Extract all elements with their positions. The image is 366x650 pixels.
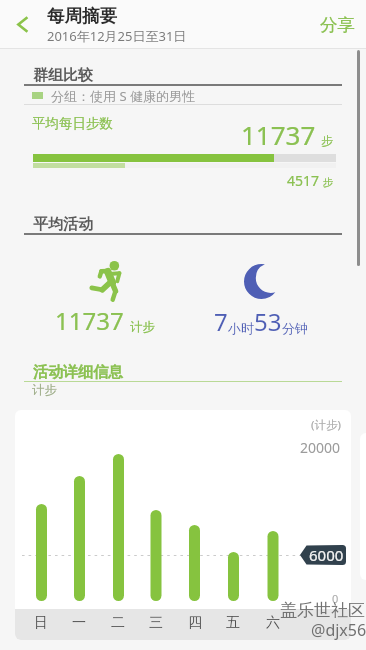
staticText: @djx56 xyxy=(311,619,366,641)
staticText: 0 xyxy=(332,591,339,606)
staticText: 每周摘要 xyxy=(47,5,117,27)
staticText: 11737 xyxy=(241,117,316,152)
staticText: 平均活动 xyxy=(33,215,93,234)
staticText: 日 xyxy=(34,614,48,632)
button[interactable]: 五 xyxy=(214,609,252,640)
staticText: 六 xyxy=(266,614,280,632)
staticText: 4517 xyxy=(287,171,320,190)
staticText: 三 xyxy=(149,614,163,632)
staticText: 分享 xyxy=(320,14,355,36)
button[interactable]: 三 xyxy=(137,609,175,640)
staticText: 盖乐世社区 xyxy=(280,600,365,621)
staticText: 分组：使用 S 健康的男性 xyxy=(51,87,195,104)
staticText: 计步 xyxy=(32,382,57,398)
staticText: 平均每日步数 xyxy=(32,115,113,132)
button[interactable]: 一 xyxy=(60,609,98,640)
button[interactable]: 四 xyxy=(176,609,214,640)
button[interactable]: 分享 xyxy=(306,0,366,49)
staticText: 步 xyxy=(323,176,334,189)
staticText: 一 xyxy=(72,614,86,632)
button[interactable]: 六 xyxy=(254,609,292,640)
staticText: 活动详细信息 xyxy=(33,363,123,382)
staticText: 分钟 xyxy=(282,320,308,336)
button[interactable]: 返回 xyxy=(0,0,45,49)
staticText: 群组比较 xyxy=(33,66,93,85)
staticText: 小时 xyxy=(228,320,254,336)
button[interactable]: 日 xyxy=(22,609,60,640)
staticText: 步 xyxy=(321,133,333,148)
staticText: 二 xyxy=(111,614,125,632)
button[interactable]: 二 xyxy=(99,609,137,640)
staticText: 20000 xyxy=(300,438,341,457)
staticText: 计步 xyxy=(130,319,155,335)
staticText: 11737 xyxy=(55,304,124,337)
button[interactable]: 分组：使用 S 健康的男性 xyxy=(24,87,342,104)
staticText: 五 xyxy=(226,614,240,632)
staticText: 2016年12月25日至31日 xyxy=(47,27,187,45)
staticText: 7 xyxy=(214,305,228,338)
staticText: 6000 xyxy=(309,545,344,565)
staticText: 53 xyxy=(254,305,282,338)
staticText: (计步) xyxy=(311,417,341,433)
staticText: 四 xyxy=(188,614,202,632)
